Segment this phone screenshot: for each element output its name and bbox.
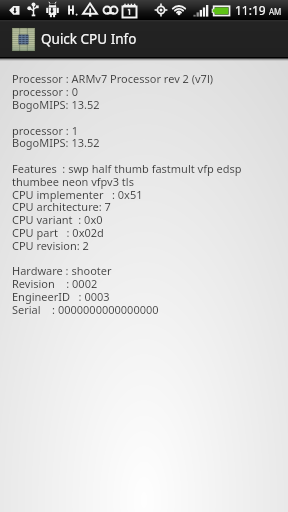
staticText: Revision : 0002 [12, 276, 98, 291]
staticText: CPU implementer : 0x51 [12, 187, 143, 202]
staticText: Features : swp half thumb fastmult vfp e… [12, 161, 242, 176]
staticText: CPU revision: 2 [12, 238, 89, 253]
staticText: CPU architecture: 7 [12, 199, 111, 214]
button[interactable]: Quick CPU Info [0, 20, 288, 57]
staticText: Serial : 0000000000000000 [12, 302, 159, 317]
staticText: Processor : ARMv7 Processor rev 2 (v7l) [12, 71, 214, 86]
staticText: AM [269, 6, 282, 17]
staticText: processor : 1 [12, 123, 78, 138]
staticText: CPU variant : 0x0 [12, 212, 103, 227]
staticText: BogoMIPS: 13.52 [12, 135, 100, 150]
staticText: CPU part : 0x02d [12, 225, 104, 240]
staticText: processor : 0 [12, 84, 78, 99]
staticText: Quick CPU Info [41, 30, 137, 48]
staticText: EngineerID : 0003 [12, 289, 110, 304]
staticText: 11:19 [235, 2, 266, 18]
staticText: Hardware : shooter [12, 263, 112, 278]
staticText: BogoMIPS: 13.52 [12, 97, 100, 112]
staticText: thumbee neon vfpv3 tls [12, 174, 134, 189]
